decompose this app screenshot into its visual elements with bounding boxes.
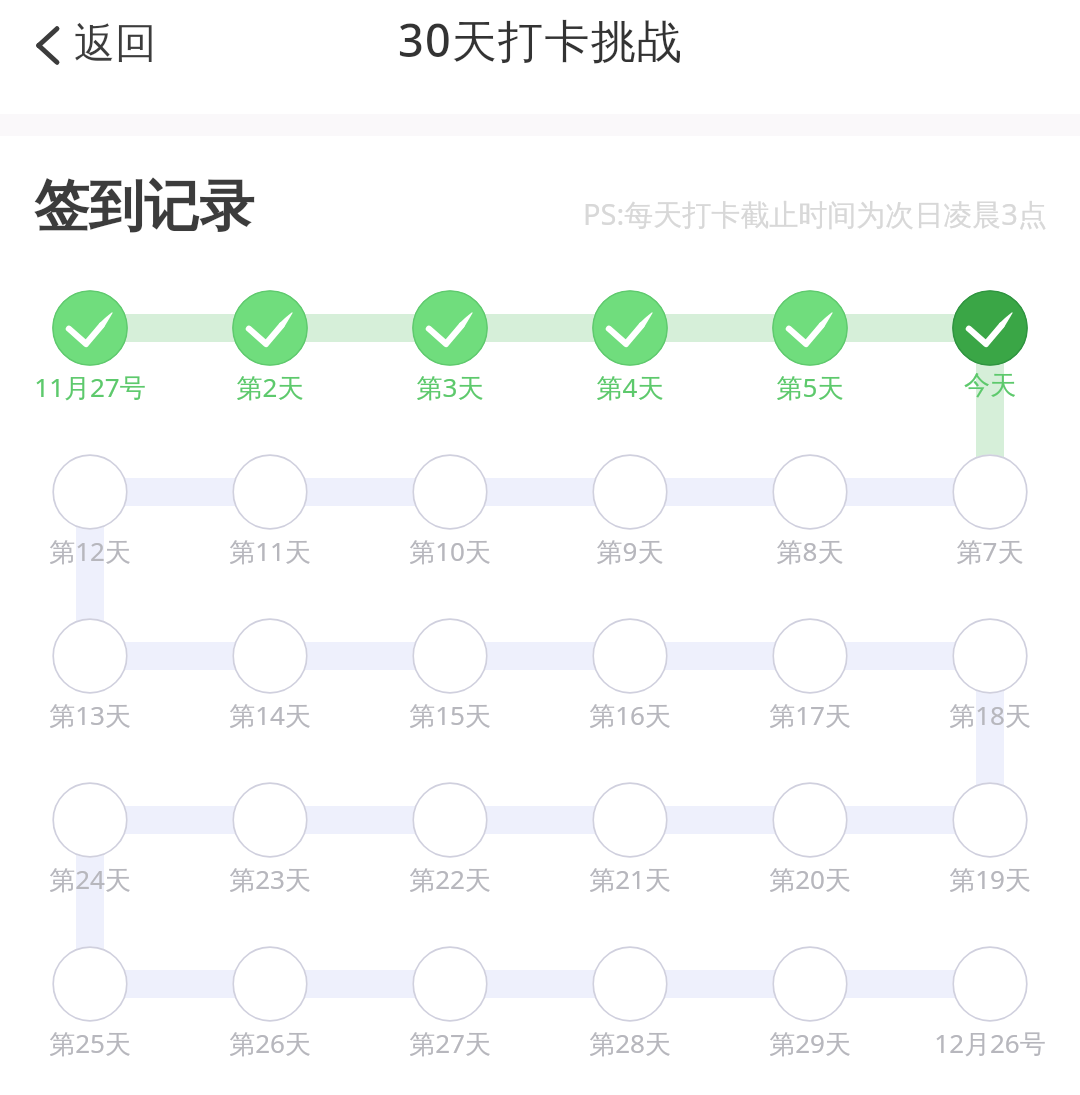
staticText: 第7天 — [900, 533, 1080, 569]
button[interactable]: 今天 — [900, 284, 1080, 410]
button[interactable]: 第2天 — [180, 284, 360, 410]
button[interactable]: 12月26号 — [900, 940, 1080, 1066]
staticText: 第21天 — [540, 861, 720, 897]
staticText: 今天 — [900, 369, 1080, 402]
staticText: 第28天 — [540, 1025, 720, 1061]
staticText: 12月26号 — [900, 1025, 1080, 1061]
button[interactable]: 第3天 — [360, 284, 540, 410]
staticText: 第24天 — [0, 861, 180, 897]
staticText: 第13天 — [0, 697, 180, 733]
staticText: 第25天 — [0, 1025, 180, 1061]
button[interactable]: 第18天 — [900, 612, 1080, 738]
button[interactable]: 第27天 — [360, 940, 540, 1066]
button[interactable]: 第17天 — [720, 612, 900, 738]
staticText: 第12天 — [0, 533, 180, 569]
staticText: 第18天 — [900, 697, 1080, 733]
staticText: 第29天 — [720, 1025, 900, 1061]
button[interactable]: 第24天 — [0, 776, 180, 902]
staticText: 返回 — [74, 18, 156, 70]
button[interactable]: 第4天 — [540, 284, 720, 410]
button[interactable]: 第15天 — [360, 612, 540, 738]
staticText: 第15天 — [360, 697, 540, 733]
staticText: 第5天 — [720, 369, 900, 405]
staticText: 第3天 — [360, 369, 540, 405]
button[interactable]: 第25天 — [0, 940, 180, 1066]
button[interactable]: 第22天 — [360, 776, 540, 902]
staticText: 第9天 — [540, 533, 720, 569]
staticText: 第16天 — [540, 697, 720, 733]
staticText: 第11天 — [180, 533, 360, 569]
staticText: PS:每天打卡截止时间为次日凌晨3点 — [583, 194, 1047, 234]
staticText: 第2天 — [180, 369, 360, 405]
staticText: 第23天 — [180, 861, 360, 897]
button[interactable]: 第26天 — [180, 940, 360, 1066]
staticText: 第19天 — [900, 861, 1080, 897]
button[interactable]: 第11天 — [180, 448, 360, 574]
staticText: 第20天 — [720, 861, 900, 897]
staticText: 第17天 — [720, 697, 900, 733]
button[interactable]: 第29天 — [720, 940, 900, 1066]
staticText: 第8天 — [720, 533, 900, 569]
staticText: 第4天 — [540, 369, 720, 405]
button[interactable]: 第19天 — [900, 776, 1080, 902]
button[interactable]: 第16天 — [540, 612, 720, 738]
staticText: 签到记录 — [34, 172, 254, 241]
staticText: 第26天 — [180, 1025, 360, 1061]
button[interactable]: 第20天 — [720, 776, 900, 902]
staticText: 30天打卡挑战 — [398, 9, 683, 70]
button[interactable]: 第23天 — [180, 776, 360, 902]
button[interactable]: 第13天 — [0, 612, 180, 738]
button[interactable]: 第14天 — [180, 612, 360, 738]
button[interactable]: 11月27号 — [0, 284, 180, 410]
staticText: 第27天 — [360, 1025, 540, 1061]
staticText: 11月27号 — [0, 369, 180, 405]
button[interactable]: 第8天 — [720, 448, 900, 574]
button[interactable]: 第7天 — [900, 448, 1080, 574]
button[interactable]: 第12天 — [0, 448, 180, 574]
button[interactable]: 第28天 — [540, 940, 720, 1066]
staticText: 第14天 — [180, 697, 360, 733]
staticText: 第10天 — [360, 533, 540, 569]
staticText: 第22天 — [360, 861, 540, 897]
button[interactable]: 第9天 — [540, 448, 720, 574]
button[interactable]: 第5天 — [720, 284, 900, 410]
button[interactable]: 第21天 — [540, 776, 720, 902]
button[interactable]: 第10天 — [360, 448, 540, 574]
button[interactable]: 返回 — [21, 8, 172, 82]
